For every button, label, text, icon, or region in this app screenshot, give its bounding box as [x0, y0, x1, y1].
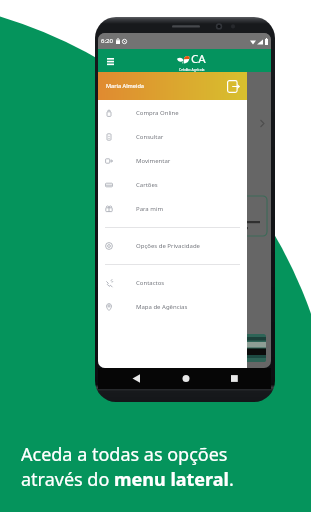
- staticText: Consultar: [136, 133, 164, 141]
- button[interactable]: Movimentar: [98, 149, 247, 173]
- button[interactable]: Para mim: [98, 197, 247, 221]
- staticText: Crédito Agrícola: [179, 67, 205, 72]
- staticText: Contactos: [136, 279, 165, 287]
- staticText: Para mim: [136, 205, 164, 213]
- staticText: Opções de Privacidade: [136, 242, 200, 250]
- staticText: CA: [191, 51, 206, 67]
- staticText: através do menu lateral.: [21, 467, 234, 492]
- button[interactable]: Consultar: [98, 125, 247, 149]
- button[interactable]: Maria Almeida: [98, 72, 247, 100]
- button[interactable]: Mapa de Agências: [98, 295, 247, 319]
- button[interactable]: Menu: [104, 55, 116, 67]
- button[interactable]: Compra Online: [98, 101, 247, 125]
- staticText: Mapa de Agências: [136, 303, 188, 311]
- button[interactable]: Contactos: [98, 271, 247, 295]
- staticText: Aceda a todas as opções: [21, 442, 228, 467]
- staticText: Maria Almeida: [106, 82, 144, 90]
- staticText: Movimentar: [136, 157, 171, 165]
- staticText: Compra Online: [136, 109, 179, 117]
- staticText: Cartões: [136, 181, 158, 189]
- button[interactable]: Cartões: [98, 173, 247, 197]
- button[interactable]: Terminar sessão: [226, 79, 240, 93]
- staticText: 6:20: [101, 37, 113, 45]
- button[interactable]: Opções de Privacidade: [98, 234, 247, 258]
